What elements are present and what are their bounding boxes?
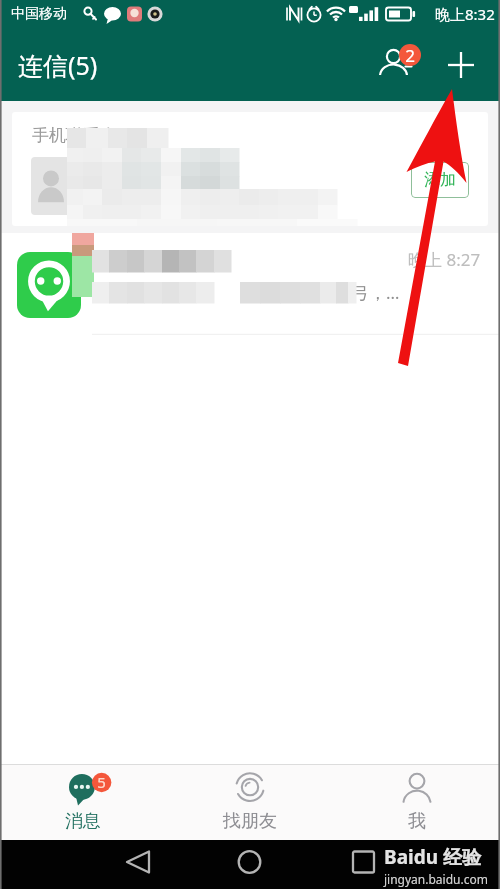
staticText: 中国移动	[11, 5, 67, 23]
button[interactable]: New friends	[369, 34, 425, 96]
staticText: 找朋友	[223, 810, 277, 833]
button[interactable]: 5	[0, 765, 166, 840]
staticText: 添加	[424, 170, 456, 190]
staticText: jingyan.baidu.com	[384, 871, 488, 887]
staticText: 2	[405, 44, 415, 66]
staticText: 5	[97, 772, 106, 792]
staticText: 手机联系人	[32, 125, 117, 146]
staticText: 晚上8:32	[435, 4, 495, 24]
staticText: 晚上 8:27	[408, 248, 481, 271]
staticText: 弓，…	[352, 281, 400, 304]
staticText: 消息	[65, 810, 101, 833]
button[interactable]: 找朋友	[166, 765, 333, 840]
button[interactable]: 手机联系人	[12, 112, 488, 226]
button[interactable]: 添加	[411, 162, 469, 198]
staticText: 我	[408, 810, 426, 833]
button[interactable]: 晚上 8:27	[0, 233, 500, 335]
staticText: 连信(5)	[18, 48, 98, 82]
button[interactable]: Add	[435, 34, 487, 96]
staticText: Baidu 经验	[384, 844, 481, 870]
button[interactable]: 我	[333, 765, 500, 840]
